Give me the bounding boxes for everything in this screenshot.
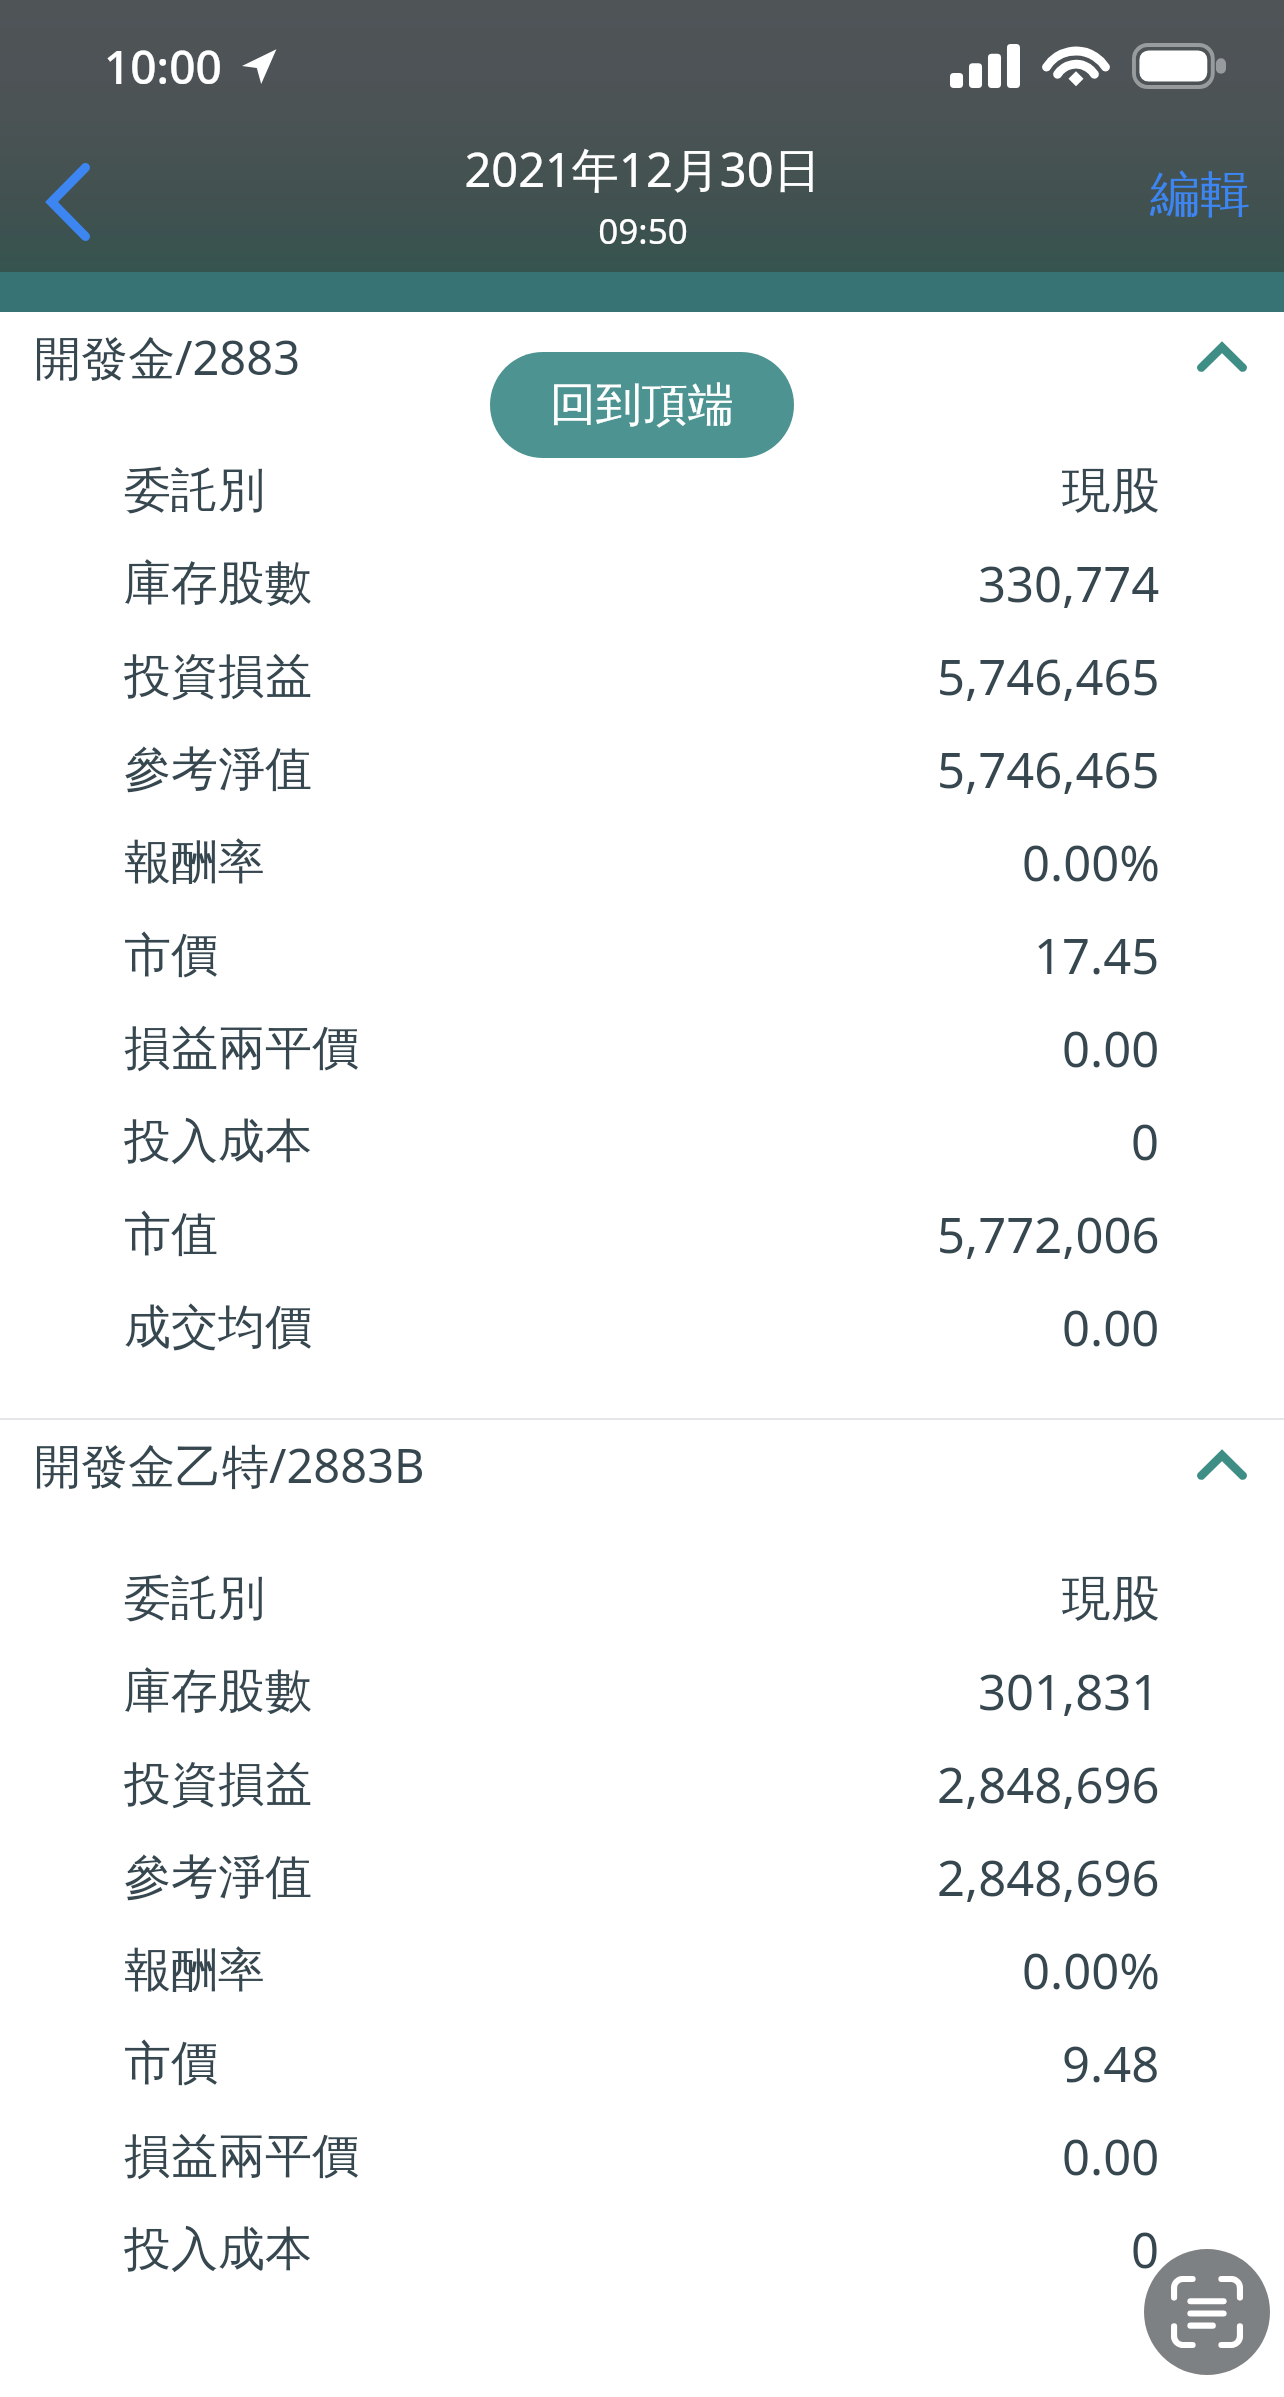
staticText: 市價 bbox=[124, 2034, 218, 2093]
button[interactable]: 報酬率 bbox=[0, 1924, 1284, 2017]
staticText: 301,831 bbox=[978, 1658, 1160, 1725]
staticText: 現股 bbox=[1062, 1568, 1160, 1630]
button[interactable]: 庫存股數 bbox=[0, 1645, 1284, 1738]
button[interactable]: 投資損益 bbox=[0, 630, 1284, 723]
staticText: 0.00 bbox=[1062, 1294, 1160, 1361]
staticText: 0.00 bbox=[1062, 2123, 1160, 2190]
staticText: 投入成本 bbox=[124, 2220, 312, 2279]
button[interactable]: 參考淨值 bbox=[0, 723, 1284, 816]
button[interactable]: 開發金/2883 bbox=[0, 312, 1284, 402]
button[interactable]: 投入成本 bbox=[0, 1095, 1284, 1188]
staticText: 參考淨值 bbox=[124, 740, 312, 799]
staticText: 庫存股數 bbox=[124, 1662, 312, 1721]
staticText: 投資損益 bbox=[124, 647, 312, 706]
staticText: 庫存股數 bbox=[124, 554, 312, 613]
staticText: 0 bbox=[1131, 1108, 1160, 1175]
staticText: 報酬率 bbox=[124, 1941, 265, 2000]
other: Collapse section bbox=[1186, 321, 1258, 393]
staticText: 參考淨值 bbox=[124, 1848, 312, 1907]
staticText: 2021年12月30日 bbox=[464, 137, 821, 201]
button[interactable]: 市價 bbox=[0, 909, 1284, 1002]
button[interactable]: 編輯 bbox=[1116, 141, 1284, 248]
staticText: 損益兩平價 bbox=[124, 2127, 359, 2186]
button[interactable]: 開發金乙特/2883B bbox=[0, 1420, 1284, 1510]
staticText: 委託別 bbox=[124, 1569, 265, 1628]
staticText: 2,848,696 bbox=[937, 1751, 1160, 1818]
staticText: 成交均價 bbox=[124, 1298, 312, 1357]
button[interactable]: 報酬率 bbox=[0, 816, 1284, 909]
staticText: 市價 bbox=[124, 926, 218, 985]
staticText: 編輯 bbox=[1150, 163, 1250, 226]
staticText: 報酬率 bbox=[124, 833, 265, 892]
staticText: 17.45 bbox=[1034, 922, 1160, 989]
staticText: 5,746,465 bbox=[937, 736, 1160, 803]
button[interactable]: 庫存股數 bbox=[0, 537, 1284, 630]
staticText: 投資損益 bbox=[124, 1755, 312, 1814]
staticText: 5,772,006 bbox=[937, 1201, 1160, 1268]
button[interactable]: 參考淨值 bbox=[0, 1831, 1284, 1924]
button[interactable]: 損益兩平價 bbox=[0, 1002, 1284, 1095]
button[interactable]: 損益兩平價 bbox=[0, 2110, 1284, 2203]
other: Collapse section bbox=[1186, 1429, 1258, 1501]
staticText: 10:00 bbox=[104, 35, 222, 98]
staticText: 回到頂端 bbox=[550, 376, 734, 434]
staticText: 0.00% bbox=[1022, 1937, 1160, 2004]
staticText: 9.48 bbox=[1062, 2030, 1160, 2097]
staticText: 09:50 bbox=[598, 207, 688, 255]
button[interactable]: 投資損益 bbox=[0, 1738, 1284, 1831]
staticText: 0.00 bbox=[1062, 1015, 1160, 1082]
button[interactable]: 市值 bbox=[0, 1188, 1284, 1281]
staticText: 現股 bbox=[1062, 460, 1160, 522]
staticText: 330,774 bbox=[978, 550, 1160, 617]
staticText: 市值 bbox=[124, 1205, 218, 1264]
button[interactable]: Back bbox=[14, 148, 122, 256]
staticText: 2,848,696 bbox=[937, 1844, 1160, 1911]
button[interactable]: 投入成本 bbox=[0, 2203, 1284, 2296]
staticText: 開發金/2883 bbox=[34, 325, 301, 389]
button[interactable]: 成交均價 bbox=[0, 1281, 1284, 1374]
button[interactable]: 市價 bbox=[0, 2017, 1284, 2110]
staticText: 5,746,465 bbox=[937, 643, 1160, 710]
staticText: 開發金乙特/2883B bbox=[34, 1433, 425, 1497]
staticText: 損益兩平價 bbox=[124, 1019, 359, 1078]
button[interactable]: 委託別 bbox=[0, 444, 1284, 537]
staticText: 0 bbox=[1131, 2216, 1160, 2283]
staticText: 委託別 bbox=[124, 461, 265, 520]
staticText: 0.00% bbox=[1022, 829, 1160, 896]
staticText: 投入成本 bbox=[124, 1112, 312, 1171]
button[interactable]: 回到頂端 bbox=[490, 352, 794, 458]
button[interactable]: 委託別 bbox=[0, 1552, 1284, 1645]
button[interactable]: Scan document bbox=[1144, 2249, 1270, 2375]
